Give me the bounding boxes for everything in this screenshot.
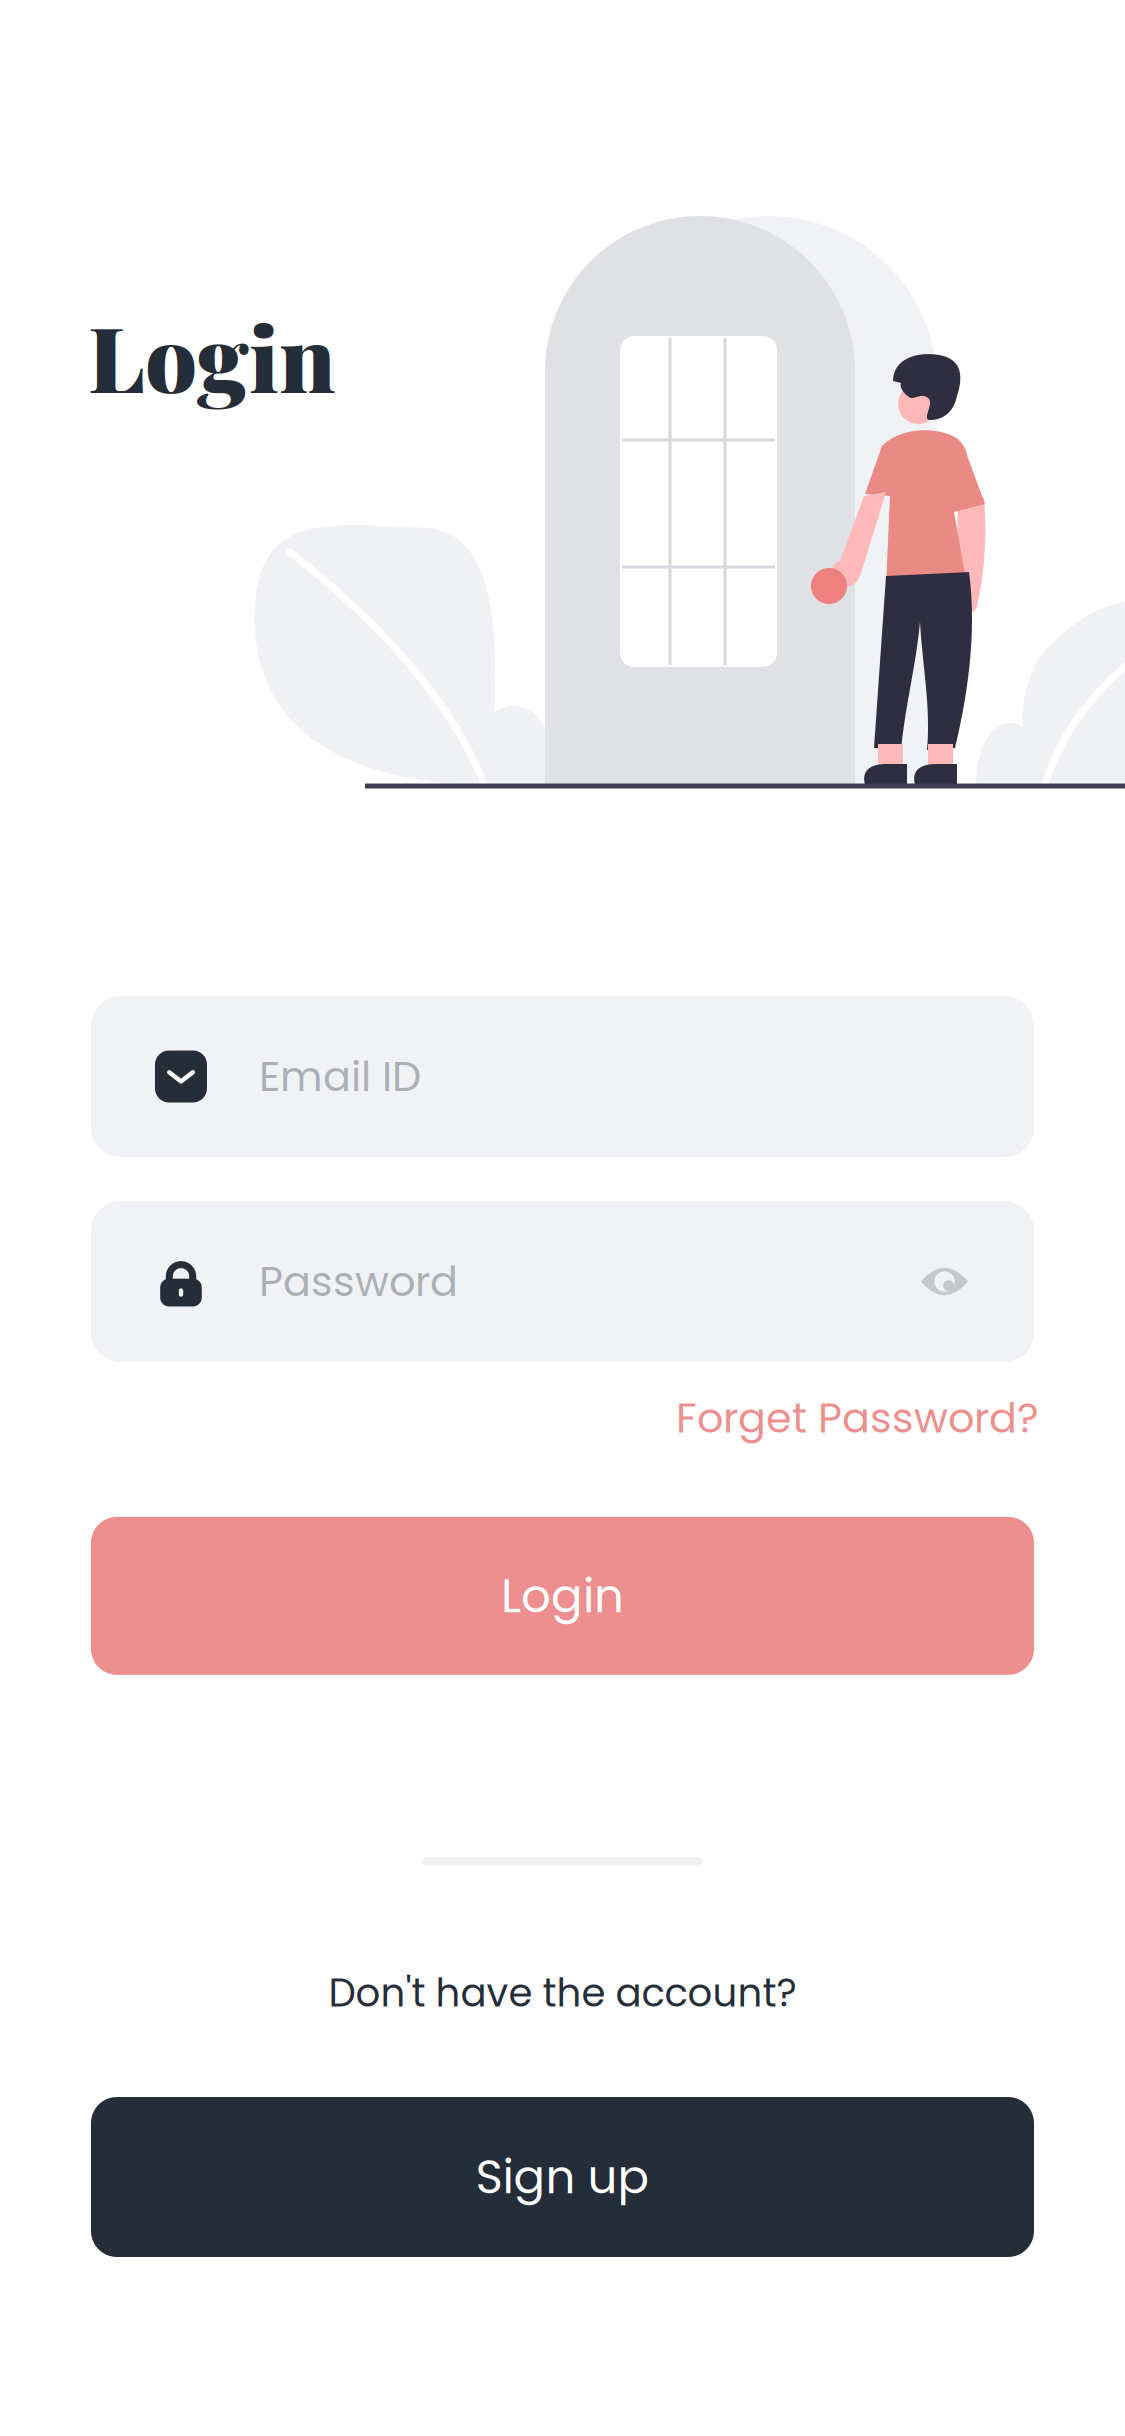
staticText: Login (501, 1563, 624, 1628)
button[interactable]: Forget Password? (0, 1362, 1125, 1457)
button[interactable]: Email ID (91, 996, 1034, 1157)
button[interactable]: Show password (891, 1201, 1034, 1362)
staticText: Password (259, 1253, 458, 1310)
button[interactable]: Password (91, 1201, 1034, 1362)
staticText: Don't have the account? (328, 1966, 796, 2020)
staticText: Email ID (259, 1048, 421, 1105)
staticText: Sign up (475, 2144, 649, 2210)
staticText: Forget Password? (676, 1389, 1039, 1447)
staticText: Login (88, 295, 336, 416)
button[interactable]: Login (91, 1517, 1034, 1675)
button[interactable]: Sign up (91, 2097, 1034, 2257)
